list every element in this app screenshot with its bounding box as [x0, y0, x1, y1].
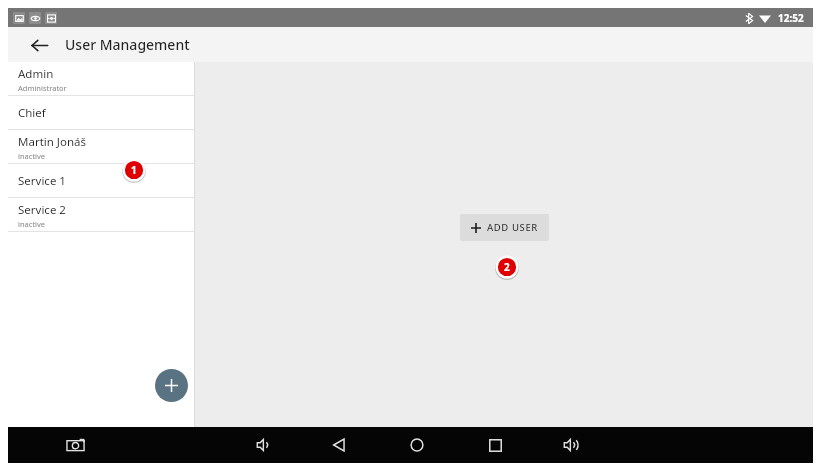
staticText: Service 2	[18, 202, 66, 218]
button[interactable]: Chief	[8, 96, 195, 130]
staticText: 12:52	[778, 11, 804, 25]
staticText: Admin	[18, 66, 54, 82]
button[interactable]: Home	[400, 428, 434, 462]
button[interactable]: Martin Jonáš	[8, 130, 195, 164]
staticText: 1	[131, 163, 137, 177]
button[interactable]: Add	[155, 369, 188, 402]
button[interactable]: Back	[322, 428, 356, 462]
staticText: Martin Jonáš	[18, 134, 87, 150]
button[interactable]: Service 2	[8, 198, 195, 232]
staticText: Administrator	[18, 83, 67, 93]
staticText: inactive	[18, 151, 46, 161]
staticText: User Management	[65, 35, 190, 54]
button[interactable]: Back	[22, 28, 56, 62]
button[interactable]: Volume down	[247, 428, 281, 462]
button[interactable]: Admin	[8, 62, 195, 96]
button[interactable]: Service 1	[8, 164, 195, 198]
button[interactable]: Screenshot	[58, 428, 92, 462]
button[interactable]: ADD USER	[460, 214, 549, 241]
staticText: 2	[504, 260, 510, 274]
button[interactable]: Recents	[478, 428, 512, 462]
staticText: Service 1	[18, 173, 66, 189]
staticText: inactive	[18, 219, 46, 229]
staticText: Chief	[18, 105, 46, 121]
staticText: ADD USER	[487, 221, 538, 234]
button[interactable]: Volume up	[554, 428, 588, 462]
